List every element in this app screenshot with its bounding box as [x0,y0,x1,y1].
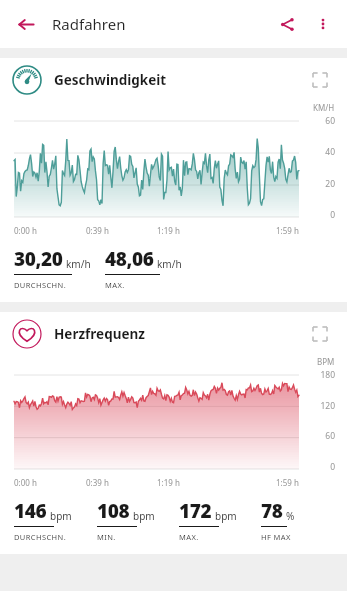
button[interactable]: Herzfrequenz [0,312,347,356]
staticText: BPM [317,356,335,367]
staticText: DURCHSCHN. [14,532,67,542]
staticText: KM/H [313,102,335,113]
staticText: bpm [50,509,72,523]
staticText: 20 [325,178,335,190]
button[interactable]: Vollbild [305,319,335,349]
staticText: MAX. [105,280,125,290]
staticText: MIN. [97,532,116,542]
button[interactable]: Geschwindigkeit [0,58,347,102]
button[interactable]: Mehr Optionen [305,6,341,42]
staticText: 1:59 h [276,225,299,236]
staticText: 172 [179,498,212,524]
staticText: 0:00 h [14,477,37,488]
staticText: 120 [320,400,335,412]
staticText: 1:59 h [276,477,299,488]
staticText: bpm [133,509,155,523]
staticText: 40 [325,146,335,158]
staticText: 78 [261,498,283,524]
staticText: 180 [320,369,335,381]
staticText: % [286,509,295,523]
staticText: km/h [66,257,91,271]
staticText: bpm [215,509,237,523]
staticText: DURCHSCHN. [14,280,67,290]
staticText: 1:19 h [157,477,180,488]
staticText: 30,20 [14,246,63,272]
button[interactable]: Zurück [8,6,44,42]
staticText: Geschwindigkeit [54,71,167,89]
staticText: 48,06 [105,246,154,272]
button[interactable]: Vollbild [305,65,335,95]
staticText: 0:00 h [14,225,37,236]
staticText: 1:19 h [157,225,180,236]
button[interactable]: Teilen [269,6,305,42]
staticText: 0 [330,461,335,473]
staticText: 0:39 h [86,477,109,488]
staticText: 0 [330,209,335,221]
staticText: 60 [325,430,335,442]
staticText: Radfahren [52,14,126,34]
staticText: HF MAX [261,532,291,542]
staticText: 60 [325,115,335,127]
staticText: 108 [97,498,130,524]
staticText: 146 [14,498,47,524]
staticText: Herzfrequenz [54,325,145,343]
staticText: 0:39 h [86,225,109,236]
staticText: MAX. [179,532,199,542]
staticText: km/h [157,257,182,271]
